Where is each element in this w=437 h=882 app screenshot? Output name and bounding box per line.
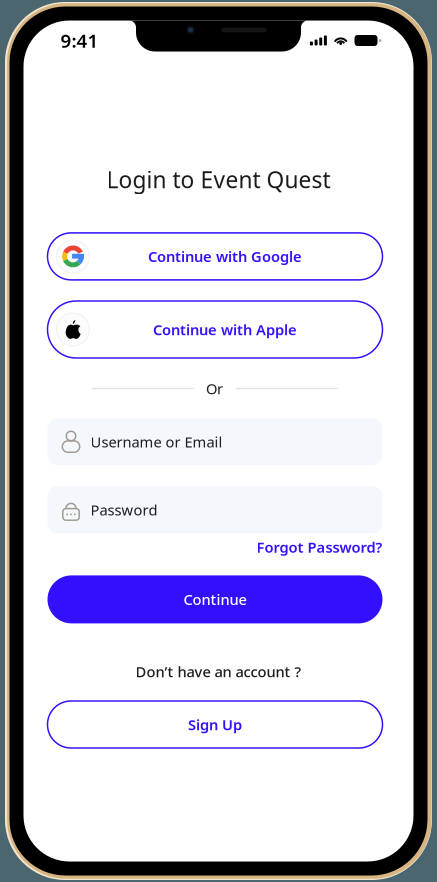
staticText: Continue with Google (148, 247, 302, 266)
staticText: Password (90, 500, 157, 520)
staticText: Don’t have an account ? (135, 662, 301, 681)
button[interactable]: Continue with Google (47, 233, 382, 280)
staticText: Continue (183, 590, 246, 609)
staticText: Continue with Apple (153, 320, 297, 339)
button[interactable]: Continue (47, 575, 382, 623)
button[interactable]: Sign Up (47, 701, 382, 748)
staticText: Login to Event Quest (106, 164, 330, 194)
staticText: Forgot Password? (256, 537, 382, 557)
staticText: Or (206, 379, 223, 398)
staticText: 9:41 (60, 28, 98, 53)
button[interactable]: Forgot Password? (256, 537, 382, 557)
staticText: Username or Email (90, 432, 222, 452)
staticText: Sign Up (188, 715, 242, 734)
button[interactable]: Continue with Apple (47, 301, 382, 358)
